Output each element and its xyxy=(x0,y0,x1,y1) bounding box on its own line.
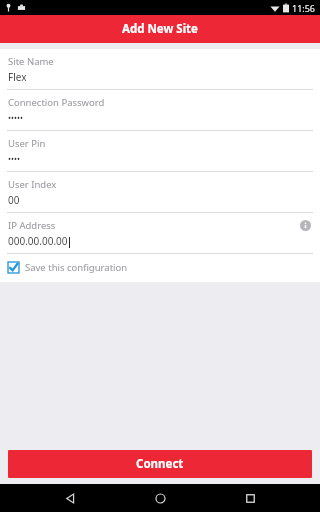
button[interactable]: Back xyxy=(50,484,90,512)
button[interactable]: User Pin xyxy=(0,131,320,172)
button[interactable]: Recent apps xyxy=(230,484,270,512)
staticText: 00 xyxy=(8,193,20,207)
staticText: Flex xyxy=(8,70,27,84)
staticText: IP Address xyxy=(8,219,56,232)
staticText: Connect xyxy=(136,456,184,472)
staticText: 000.00.00.00 xyxy=(8,234,68,248)
button[interactable]: Connect xyxy=(8,450,312,478)
staticText: Save this configuration xyxy=(25,261,128,274)
button[interactable]: Home xyxy=(140,484,180,512)
staticText: Connection Password xyxy=(8,96,105,109)
staticText: ••••• xyxy=(8,112,24,123)
staticText: 11:56 xyxy=(292,2,316,14)
button[interactable]: Connection Password xyxy=(0,90,320,131)
button[interactable]: Information xyxy=(299,219,312,232)
staticText: •••• xyxy=(8,153,21,164)
staticText: User Pin xyxy=(8,137,46,150)
staticText: User Index xyxy=(8,178,57,191)
staticText: Add New Site xyxy=(122,21,198,37)
button[interactable]: IP Address xyxy=(0,213,320,254)
staticText: Site Name xyxy=(8,55,54,68)
button[interactable]: User Index xyxy=(0,172,320,213)
button[interactable]: Save this configuration xyxy=(8,261,320,274)
button[interactable]: Site Name xyxy=(0,49,320,90)
